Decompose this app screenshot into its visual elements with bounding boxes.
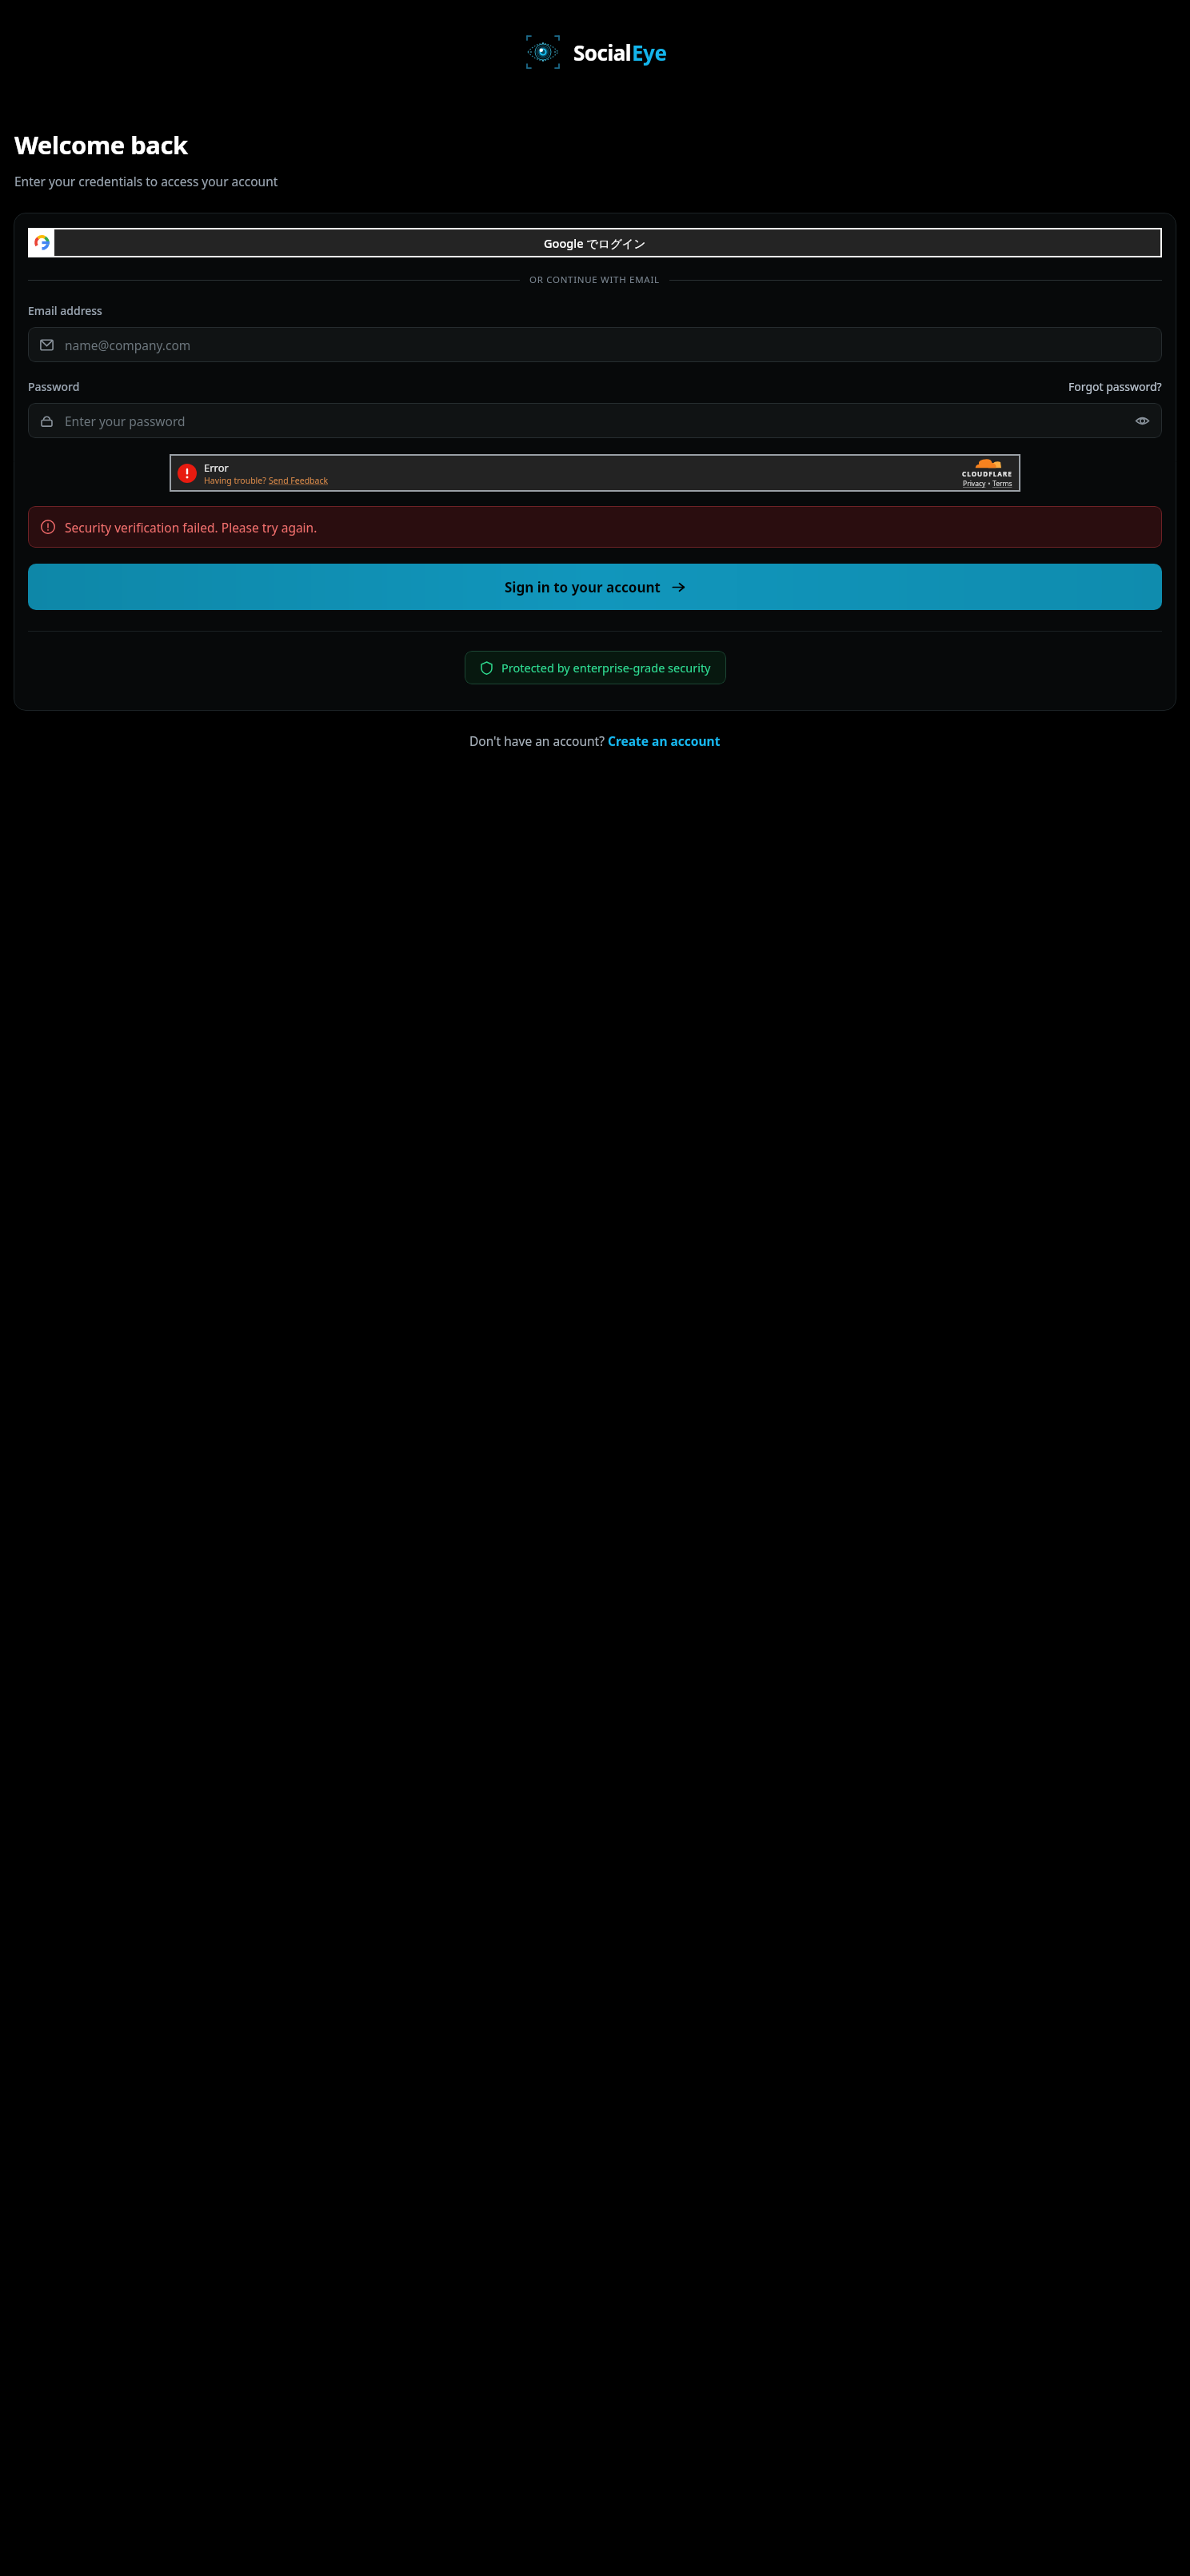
button[interactable]: Send Feedback (269, 475, 329, 486)
staticText: Password (28, 379, 80, 394)
button[interactable]: Error (170, 454, 1020, 492)
staticText: Don't have an account? (469, 732, 608, 749)
button[interactable]: Google でログイン (30, 229, 1160, 256)
staticText: Enter your password (65, 413, 186, 429)
staticText: Forgot password? (1068, 379, 1162, 394)
staticText: Having trouble? (204, 475, 269, 486)
button[interactable]: Sign in to your account (28, 564, 1162, 610)
staticText: name@company.com (65, 337, 191, 353)
staticText: Sign in to your account (505, 578, 661, 596)
button[interactable]: Create an account (608, 732, 721, 749)
staticText: Google でログイン (544, 235, 646, 251)
staticText: Error (204, 461, 229, 475)
staticText: Email address (28, 303, 102, 318)
staticText: Create an account (608, 732, 721, 749)
staticText: Enter your credentials to access your ac… (14, 173, 278, 189)
other: SocialEye logo (523, 32, 563, 72)
staticText: Security verification failed. Please try… (65, 519, 317, 536)
staticText: Protected by enterprise-grade security (501, 660, 711, 676)
button[interactable]: Enter your password (28, 403, 1162, 438)
button[interactable]: Terms (992, 479, 1012, 488)
staticText: CLOUDFLARE (962, 469, 1012, 478)
staticText: • (986, 479, 992, 488)
button[interactable]: name@company.com (28, 327, 1162, 362)
button[interactable]: Protected by enterprise-grade security (465, 651, 726, 684)
staticText: Eye (632, 38, 667, 66)
staticText: Welcome back (14, 128, 188, 161)
staticText: Social (573, 38, 632, 66)
staticText: OR CONTINUE WITH EMAIL (529, 273, 660, 286)
button[interactable]: Privacy (963, 479, 986, 488)
button[interactable]: Show password (1133, 412, 1151, 429)
button[interactable]: Forgot password? (1068, 379, 1162, 394)
